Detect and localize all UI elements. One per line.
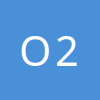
staticText: O bbox=[19, 23, 51, 77]
staticText: 2 bbox=[55, 23, 79, 77]
button[interactable]: Profile photo, O2 bbox=[0, 0, 100, 100]
